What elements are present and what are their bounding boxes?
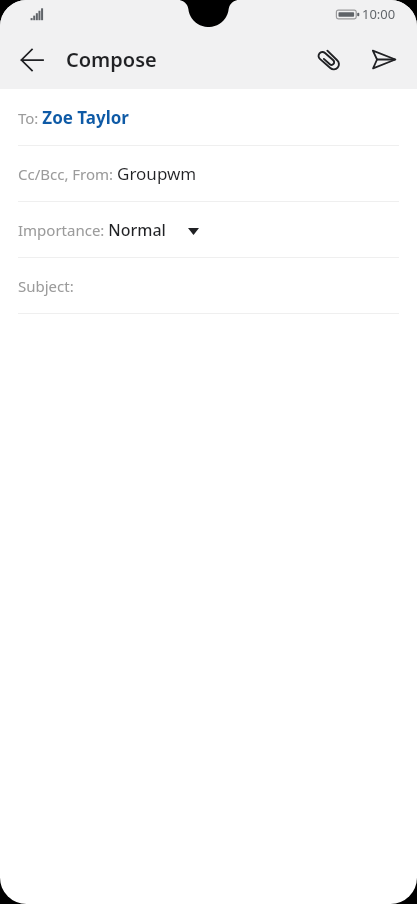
staticText: Compose	[66, 46, 157, 73]
button[interactable]: To: Zoe Taylor	[0, 90, 417, 146]
button[interactable]: Attach file	[307, 38, 351, 82]
button[interactable]: Send	[362, 37, 406, 81]
staticText: Cc/Bcc, From: Groupwm	[18, 162, 197, 185]
staticText: Importance: Normal	[18, 219, 166, 241]
staticText: Subject:	[18, 276, 74, 296]
button[interactable]: Importance: Normal	[0, 202, 417, 258]
staticText: To: Zoe Taylor	[18, 106, 129, 129]
button[interactable]: Cc/Bcc, From: Groupwm	[0, 146, 417, 202]
button[interactable]: Subject:	[0, 258, 417, 314]
staticText: 10:00	[362, 5, 396, 23]
button[interactable]: Back	[10, 38, 54, 82]
